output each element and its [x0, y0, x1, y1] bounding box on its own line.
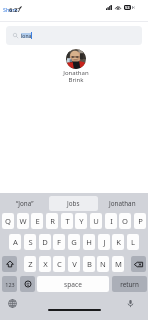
- button[interactable]: Switch keyboard: [8, 299, 17, 308]
- staticText: Jonathan Brink: [56, 69, 96, 84]
- staticText: R: [50, 216, 55, 226]
- button[interactable]: Jobs: [49, 196, 98, 211]
- button[interactable]: “Jona”: [0, 196, 49, 211]
- staticText: F: [57, 237, 61, 247]
- button[interactable]: V: [68, 256, 80, 272]
- staticText: return: [120, 280, 139, 289]
- button[interactable]: S: [24, 234, 36, 250]
- button[interactable]: I: [105, 213, 117, 229]
- staticText: Z: [28, 259, 33, 269]
- button[interactable]: A: [9, 234, 21, 250]
- staticText: space: [64, 280, 82, 289]
- button[interactable]: Shift: [2, 256, 17, 272]
- button[interactable]: Y: [75, 213, 87, 229]
- staticText: C: [57, 259, 62, 269]
- button[interactable]: C: [53, 256, 65, 272]
- button[interactable]: F: [53, 234, 65, 250]
- staticText: V: [72, 259, 77, 269]
- staticText: I: [110, 216, 113, 226]
- staticText: E: [35, 216, 40, 226]
- staticText: M: [115, 259, 122, 269]
- staticText: O: [122, 216, 128, 226]
- staticText: Jonathan: [109, 199, 136, 208]
- button[interactable]: Emoji: [20, 276, 35, 292]
- staticText: S: [28, 237, 33, 247]
- button[interactable]: J: [98, 234, 110, 250]
- staticText: 53: [125, 5, 130, 10]
- staticText: Jona: [21, 33, 32, 38]
- staticText: B: [87, 259, 92, 269]
- button[interactable]: D: [39, 234, 51, 250]
- button[interactable]: Jonathan: [98, 196, 147, 211]
- staticText: K: [116, 237, 121, 247]
- button[interactable]: T: [61, 213, 73, 229]
- staticText: L: [131, 237, 135, 247]
- button[interactable]: Dictation: [126, 299, 135, 308]
- staticText: 123: [5, 281, 15, 288]
- staticText: Y: [79, 216, 84, 226]
- staticText: X: [43, 259, 48, 269]
- button[interactable]: K: [112, 234, 124, 250]
- button[interactable]: Q: [2, 213, 14, 229]
- button[interactable]: Jonathan Brink: [66, 49, 86, 69]
- button[interactable]: Search: [6, 26, 142, 45]
- button[interactable]: R: [46, 213, 58, 229]
- staticText: Q: [5, 216, 11, 226]
- button[interactable]: return: [112, 276, 147, 292]
- button[interactable]: Backspace: [131, 256, 146, 272]
- staticText: J: [103, 237, 106, 247]
- button[interactable]: L: [127, 234, 139, 250]
- button[interactable]: P: [134, 213, 146, 229]
- button[interactable]: H: [83, 234, 95, 250]
- button[interactable]: M: [112, 256, 124, 272]
- button[interactable]: N: [97, 256, 109, 272]
- button[interactable]: Share: [3, 6, 18, 13]
- staticText: D: [42, 237, 48, 247]
- staticText: W: [19, 216, 27, 226]
- button[interactable]: Z: [24, 256, 36, 272]
- button[interactable]: space: [37, 276, 109, 292]
- staticText: 6:27: [9, 6, 21, 14]
- staticText: T: [65, 216, 70, 226]
- staticText: N: [100, 259, 106, 269]
- button[interactable]: X: [39, 256, 51, 272]
- staticText: P: [138, 216, 143, 226]
- button[interactable]: G: [68, 234, 80, 250]
- button[interactable]: W: [17, 213, 29, 229]
- staticText: G: [71, 237, 77, 247]
- button[interactable]: O: [119, 213, 131, 229]
- staticText: “Jona”: [16, 199, 34, 208]
- button[interactable]: E: [31, 213, 43, 229]
- button[interactable]: U: [90, 213, 102, 229]
- staticText: Jobs: [67, 199, 80, 208]
- staticText: H: [86, 237, 92, 247]
- staticText: U: [93, 216, 99, 226]
- button[interactable]: 123: [2, 276, 17, 292]
- button[interactable]: B: [83, 256, 95, 272]
- staticText: A: [13, 237, 18, 247]
